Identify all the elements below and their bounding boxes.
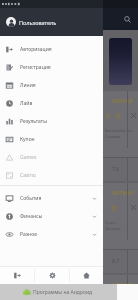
button[interactable]: Авторизация	[0, 40, 103, 58]
button[interactable]: Casino	[0, 166, 103, 184]
staticText: Casino	[20, 172, 36, 179]
staticText: Крист	[105, 220, 117, 225]
staticText: 7.6	[112, 166, 120, 173]
staticText: Разное	[20, 231, 37, 238]
button[interactable]: Log in	[0, 267, 34, 284]
button[interactable]: Программы на Андроид	[0, 284, 138, 300]
staticText: Лайв	[20, 100, 33, 107]
staticText: Программы на Андроид	[33, 289, 93, 296]
button[interactable]: Финансы	[0, 207, 103, 225]
button[interactable]: Home	[70, 267, 103, 284]
button[interactable]: Результаты	[0, 112, 103, 130]
button[interactable]: Promo banner	[109, 38, 132, 85]
button[interactable]: Лайв	[0, 94, 103, 112]
staticText: 8.7	[112, 258, 120, 265]
staticText: Автомобилист	[105, 128, 133, 133]
button[interactable]: Games	[0, 148, 103, 166]
staticText: Регистрация	[20, 64, 51, 71]
button[interactable]: Search	[120, 12, 134, 26]
staticText: Динамо	[105, 226, 121, 231]
staticText: События	[20, 195, 42, 202]
button[interactable]: Settings	[35, 267, 69, 284]
staticText: Салават	[105, 134, 121, 139]
staticText: Games	[20, 154, 37, 161]
button[interactable]: Регистрация	[0, 58, 103, 76]
staticText: Линия	[20, 82, 36, 89]
staticText: Пользователь	[19, 19, 57, 26]
staticText: ФУТБОЛ	[112, 190, 134, 197]
staticText: ТЕННИС	[112, 282, 133, 289]
staticText: Авторизация	[20, 46, 52, 53]
staticText: Финансы	[20, 213, 43, 220]
staticText: Купон	[20, 136, 35, 143]
button[interactable]: Купон	[0, 130, 103, 148]
staticText: Результаты	[20, 118, 47, 125]
button[interactable]: Разное	[0, 225, 103, 243]
button[interactable]: События	[0, 189, 103, 207]
button[interactable]: Линия	[0, 76, 103, 94]
staticText: ХОККЕЙ	[112, 98, 133, 105]
